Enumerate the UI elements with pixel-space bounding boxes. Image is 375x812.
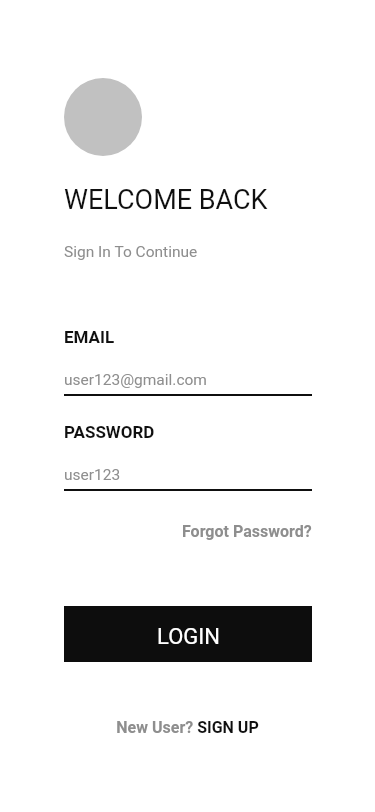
- other: Profile picture: [64, 78, 142, 156]
- staticText: user123@gmail.com: [64, 371, 207, 389]
- staticText: New User? SIGN UP: [116, 718, 259, 737]
- button[interactable]: New User? SIGN UP: [116, 718, 259, 737]
- staticText: Sign In To Continue: [64, 243, 198, 261]
- button[interactable]: Forgot Password?: [64, 516, 312, 544]
- staticText: LOGIN: [157, 624, 220, 650]
- button[interactable]: Email: [64, 361, 312, 396]
- staticText: EMAIL: [64, 327, 115, 347]
- staticText: Forgot Password?: [182, 522, 312, 541]
- button[interactable]: LOGIN: [64, 606, 312, 662]
- staticText: user123: [64, 466, 121, 484]
- staticText: PASSWORD: [64, 422, 155, 442]
- staticText: WELCOME BACK: [64, 184, 268, 216]
- button[interactable]: Password: [64, 456, 312, 491]
